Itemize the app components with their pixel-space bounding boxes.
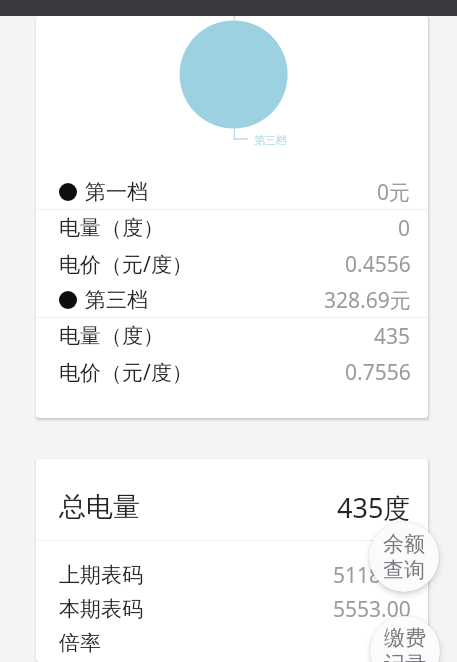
- staticText: 电价（元/度）: [59, 358, 193, 387]
- staticText: 0: [398, 214, 411, 243]
- button[interactable]: 第三档: [36, 282, 428, 318]
- staticText: 435度: [337, 489, 411, 526]
- staticText: 电价（元/度）: [59, 250, 193, 279]
- button[interactable]: 余额 查询: [369, 522, 439, 592]
- staticText: 第三档: [85, 287, 148, 313]
- button[interactable]: 上期表码: [36, 558, 428, 592]
- button[interactable]: 倍率: [36, 626, 428, 660]
- staticText: 第一档: [85, 179, 148, 205]
- staticText: 倍率: [59, 630, 101, 656]
- button[interactable]: 电价（元/度）: [36, 246, 428, 282]
- staticText: 0.4556: [345, 250, 411, 279]
- staticText: 缴费 记录: [384, 625, 426, 662]
- button[interactable]: 电量（度）: [36, 318, 428, 354]
- button[interactable]: 电量（度）: [36, 210, 428, 246]
- button[interactable]: 缴费 记录: [370, 616, 440, 662]
- staticText: 总电量: [59, 490, 140, 524]
- staticText: 0元: [377, 178, 411, 207]
- staticText: 0.7556: [345, 358, 411, 387]
- staticText: 本期表码: [59, 596, 143, 622]
- staticText: 328.69元: [324, 286, 411, 315]
- staticText: 第三档: [254, 133, 287, 147]
- staticText: 电量（度）: [59, 215, 164, 241]
- button[interactable]: 总电量: [36, 459, 428, 541]
- button[interactable]: 电价（元/度）: [36, 354, 428, 390]
- button[interactable]: 本期表码: [36, 592, 428, 626]
- staticText: 435: [374, 322, 411, 351]
- staticText: 5553.00: [333, 595, 411, 624]
- staticText: 1: [398, 629, 411, 658]
- button[interactable]: 第一档: [36, 174, 428, 210]
- staticText: 5118.00: [333, 561, 411, 590]
- staticText: 余额 查询: [383, 531, 425, 583]
- staticText: 电量（度）: [59, 323, 164, 349]
- staticText: 上期表码: [59, 562, 143, 588]
